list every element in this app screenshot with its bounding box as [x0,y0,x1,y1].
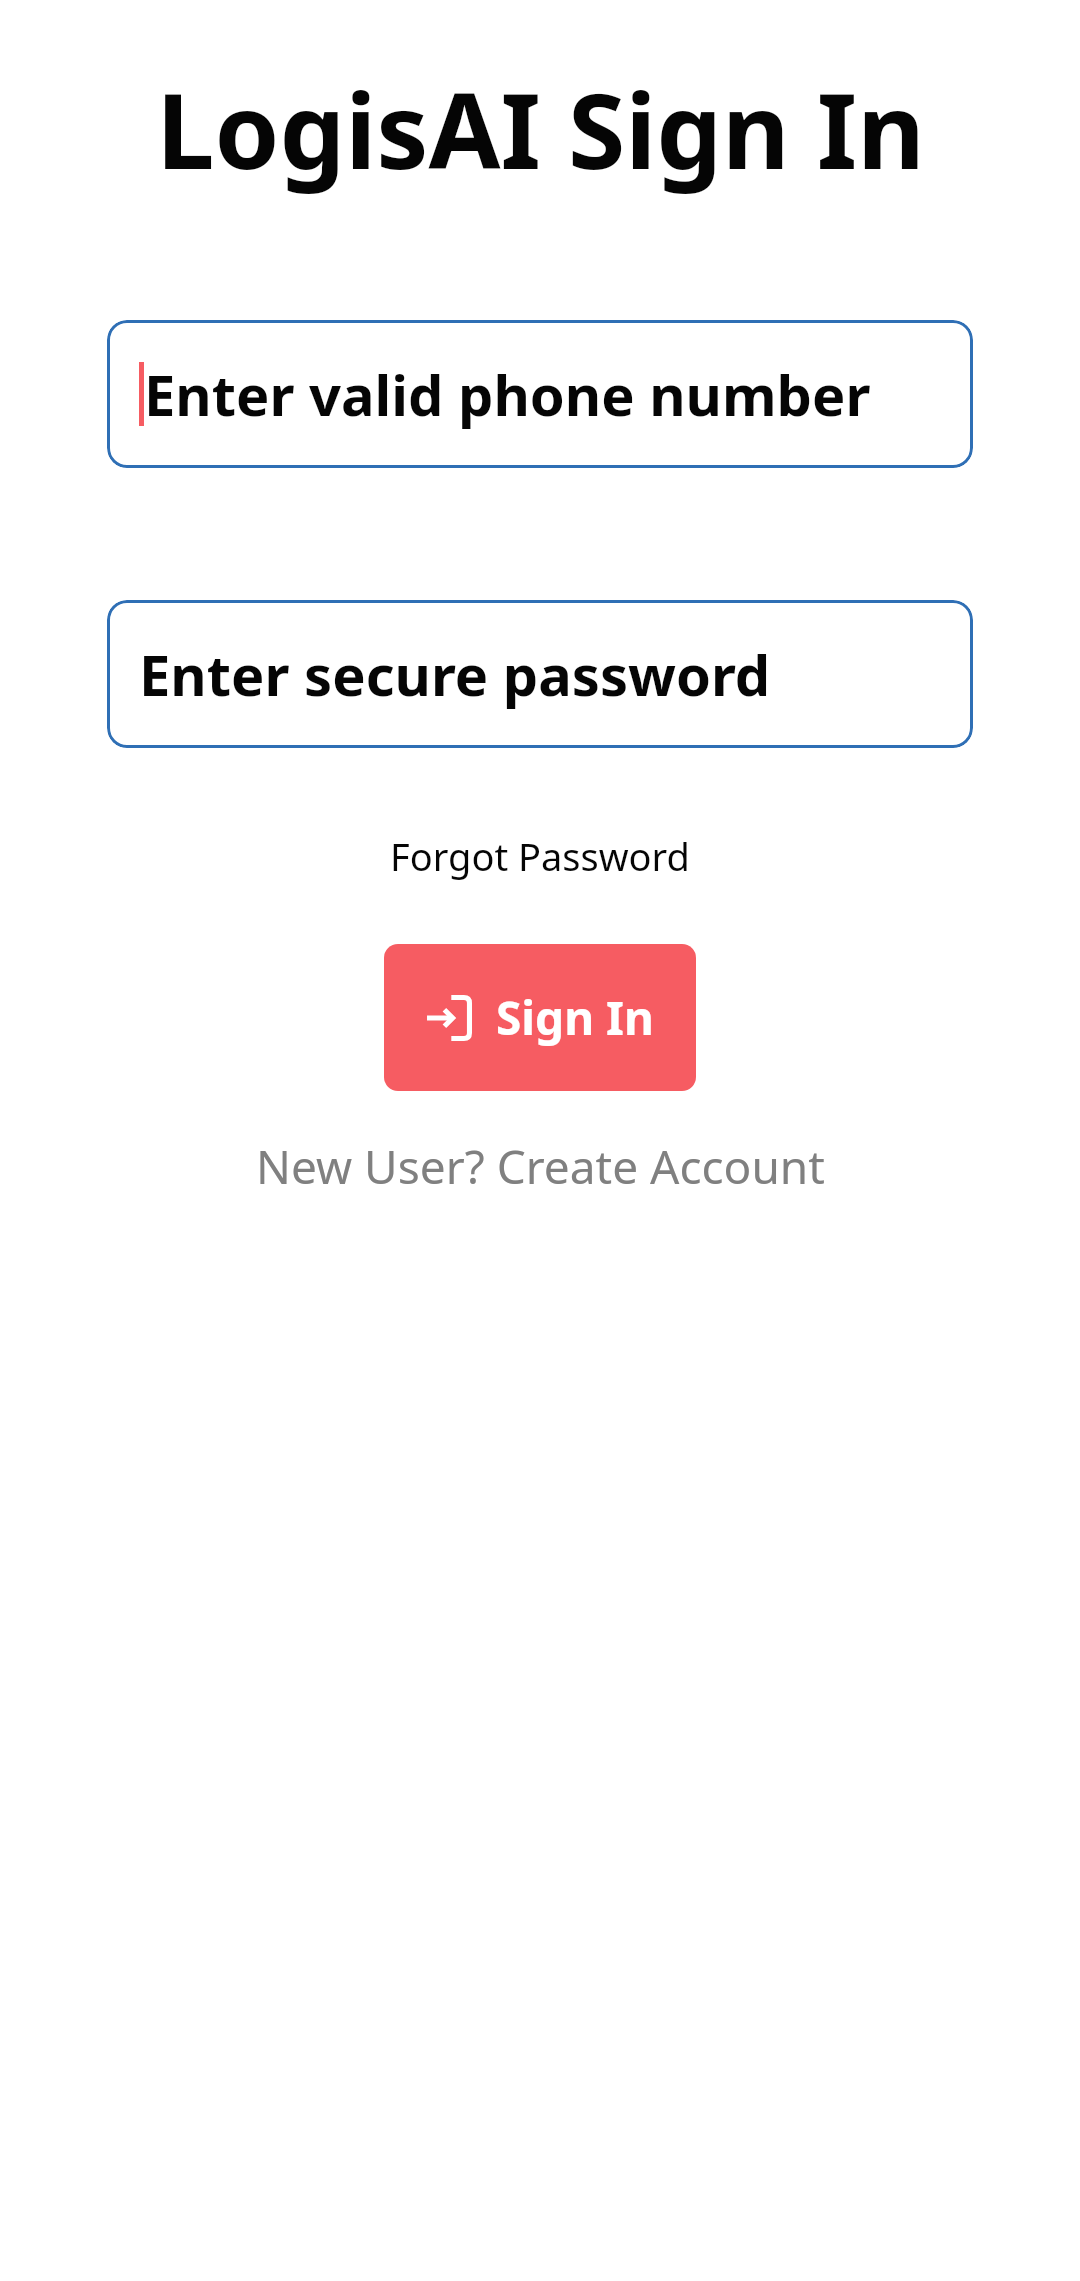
button[interactable]: Enter valid phone number [107,320,973,468]
other: Sign In [426,995,472,1041]
button[interactable]: Enter secure password [107,600,973,748]
button[interactable]: New User? Create Account [242,1129,839,1204]
staticText: New User? Create Account [256,1135,825,1198]
button[interactable]: Forgot Password [376,824,704,888]
button[interactable]: Sign In [384,944,696,1091]
staticText: Enter valid phone number [144,356,871,432]
staticText: Forgot Password [390,830,690,882]
staticText: LogisAI Sign In [156,58,925,200]
staticText: Sign In [496,986,654,1049]
staticText: Enter secure password [139,636,771,712]
